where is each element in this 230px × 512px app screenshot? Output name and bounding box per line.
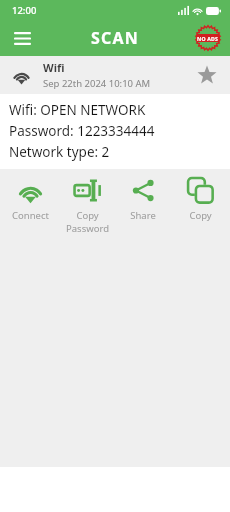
staticText: Wifi: OPEN NETWORK: [9, 101, 146, 119]
staticText: Password: 1223334444: [9, 122, 155, 140]
button[interactable]: Menu: [6, 22, 38, 54]
staticText: Sep 22th 2024 10:10 AM: [43, 77, 151, 90]
staticText: Copy: [76, 209, 99, 222]
staticText: Share: [130, 209, 156, 222]
button[interactable]: Copy: [60, 177, 114, 235]
staticText: SCAN: [91, 27, 139, 49]
button[interactable]: Wifi: [0, 56, 230, 94]
staticText: Copy: [189, 209, 212, 222]
button[interactable]: Share: [116, 177, 170, 222]
button[interactable]: Remove ads: [193, 23, 223, 53]
staticText: 12:00: [12, 4, 37, 17]
button[interactable]: Favorite: [194, 62, 220, 88]
staticText: Wifi: [43, 60, 65, 75]
staticText: NO ADS: [197, 35, 219, 42]
staticText: Connect: [12, 209, 49, 222]
staticText: Network type: 2: [9, 143, 110, 161]
staticText: Password: [66, 222, 109, 235]
button[interactable]: Connect: [3, 177, 57, 222]
button[interactable]: Copy: [173, 177, 227, 222]
